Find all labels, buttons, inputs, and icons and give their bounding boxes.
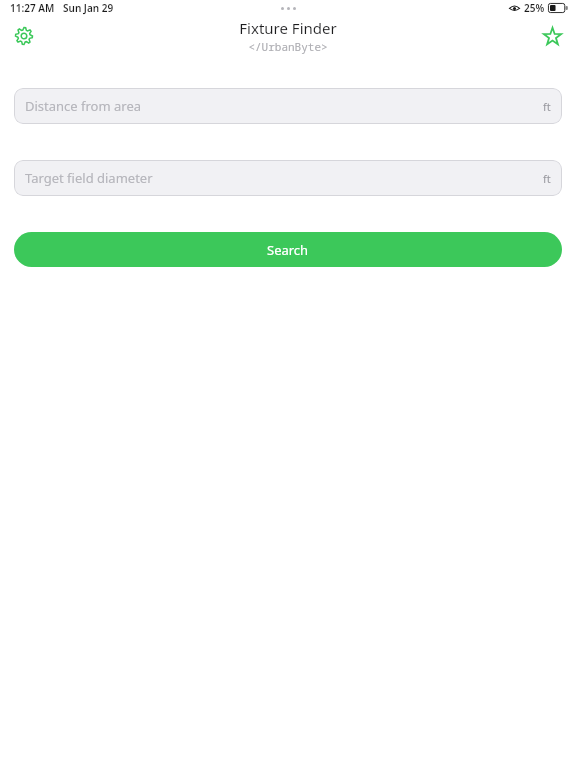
- staticText: 11:27 AM: [10, 1, 55, 15]
- staticText: Target field diameter: [25, 169, 543, 187]
- button[interactable]: Favorite: [534, 18, 570, 54]
- staticText: ft: [543, 99, 551, 114]
- button[interactable]: Target field diameter: [14, 160, 562, 196]
- staticText: ft: [543, 171, 551, 186]
- staticText: Fixture Finder: [239, 18, 337, 38]
- button[interactable]: Distance from area: [14, 88, 562, 124]
- staticText: 25%: [524, 1, 545, 15]
- staticText: Sun Jan 29: [63, 1, 114, 15]
- button[interactable]: Settings: [6, 18, 42, 54]
- staticText: Distance from area: [25, 97, 543, 115]
- button[interactable]: Search: [14, 232, 562, 267]
- staticText: </UrbanByte>: [248, 39, 328, 54]
- staticText: Search: [267, 241, 309, 259]
